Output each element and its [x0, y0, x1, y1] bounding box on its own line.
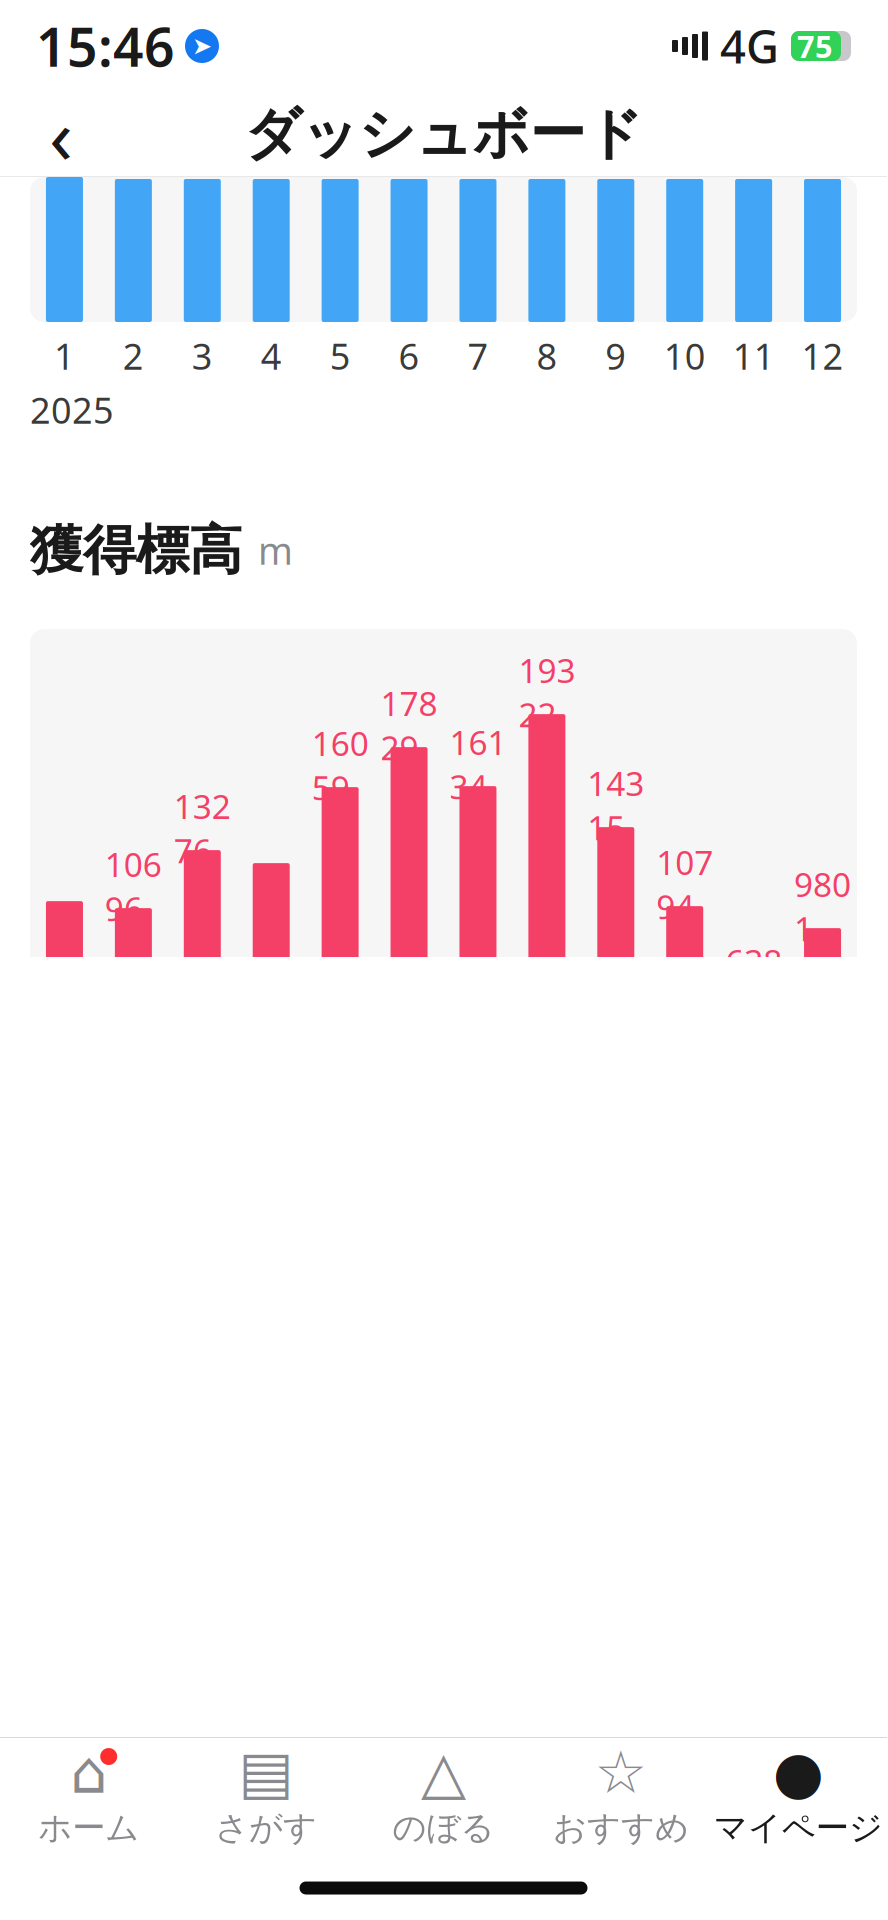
staticText: 13276 [174, 784, 231, 872]
staticText: 10 [664, 332, 706, 380]
staticText: 7 [467, 332, 488, 380]
button[interactable]: ▤ [177, 1733, 355, 1860]
staticText: さがす [215, 1807, 317, 1848]
staticText: 2 [123, 332, 144, 380]
staticText: 17829 [380, 681, 437, 769]
staticText: マイページ [714, 1807, 883, 1848]
staticText: 6381 [725, 939, 782, 1027]
staticText: おすすめ [553, 1807, 689, 1848]
staticText: 11 [733, 332, 775, 380]
staticText: 16059 [312, 721, 369, 809]
staticText: 19322 [518, 648, 575, 736]
staticText: 9801 [794, 862, 851, 950]
staticText: 4 [261, 332, 282, 380]
staticText: m [258, 526, 293, 575]
staticText: 8 [536, 332, 557, 380]
staticText: 3 [192, 332, 213, 380]
staticText: 12 [801, 332, 843, 380]
staticText: ▤ [239, 1739, 294, 1806]
button[interactable]: △ [355, 1733, 532, 1860]
staticText: 5 [330, 332, 351, 380]
button[interactable]: ⌂ [0, 1733, 177, 1860]
staticText: ホーム [38, 1807, 139, 1848]
button[interactable]: ● [710, 1733, 887, 1860]
staticText: 10696 [105, 842, 162, 930]
staticText: ➤ [192, 32, 212, 60]
staticText: 6 [398, 332, 419, 380]
staticText: ☆ [594, 1739, 647, 1806]
staticText: ● [773, 1739, 824, 1806]
staticText: 75 [797, 26, 833, 66]
staticText: 10794 [656, 840, 713, 928]
staticText: のぼる [392, 1807, 494, 1848]
staticText: 4G [720, 16, 779, 76]
staticText: ⌂ [70, 1739, 107, 1806]
staticText: 15:46 [36, 11, 175, 81]
staticText: △ [421, 1739, 466, 1806]
staticText: 2025 [30, 386, 114, 434]
staticText: 1 [54, 332, 75, 380]
staticText: 14315 [587, 761, 644, 849]
staticText: 9 [605, 332, 626, 380]
button[interactable]: ☆ [532, 1733, 710, 1860]
staticText: 獲得標高 [30, 518, 242, 583]
staticText: 16134 [449, 720, 506, 808]
button[interactable]: 戻る [22, 95, 100, 173]
staticText: ‹ [49, 83, 73, 185]
staticText: ダッシュボード [244, 100, 642, 168]
